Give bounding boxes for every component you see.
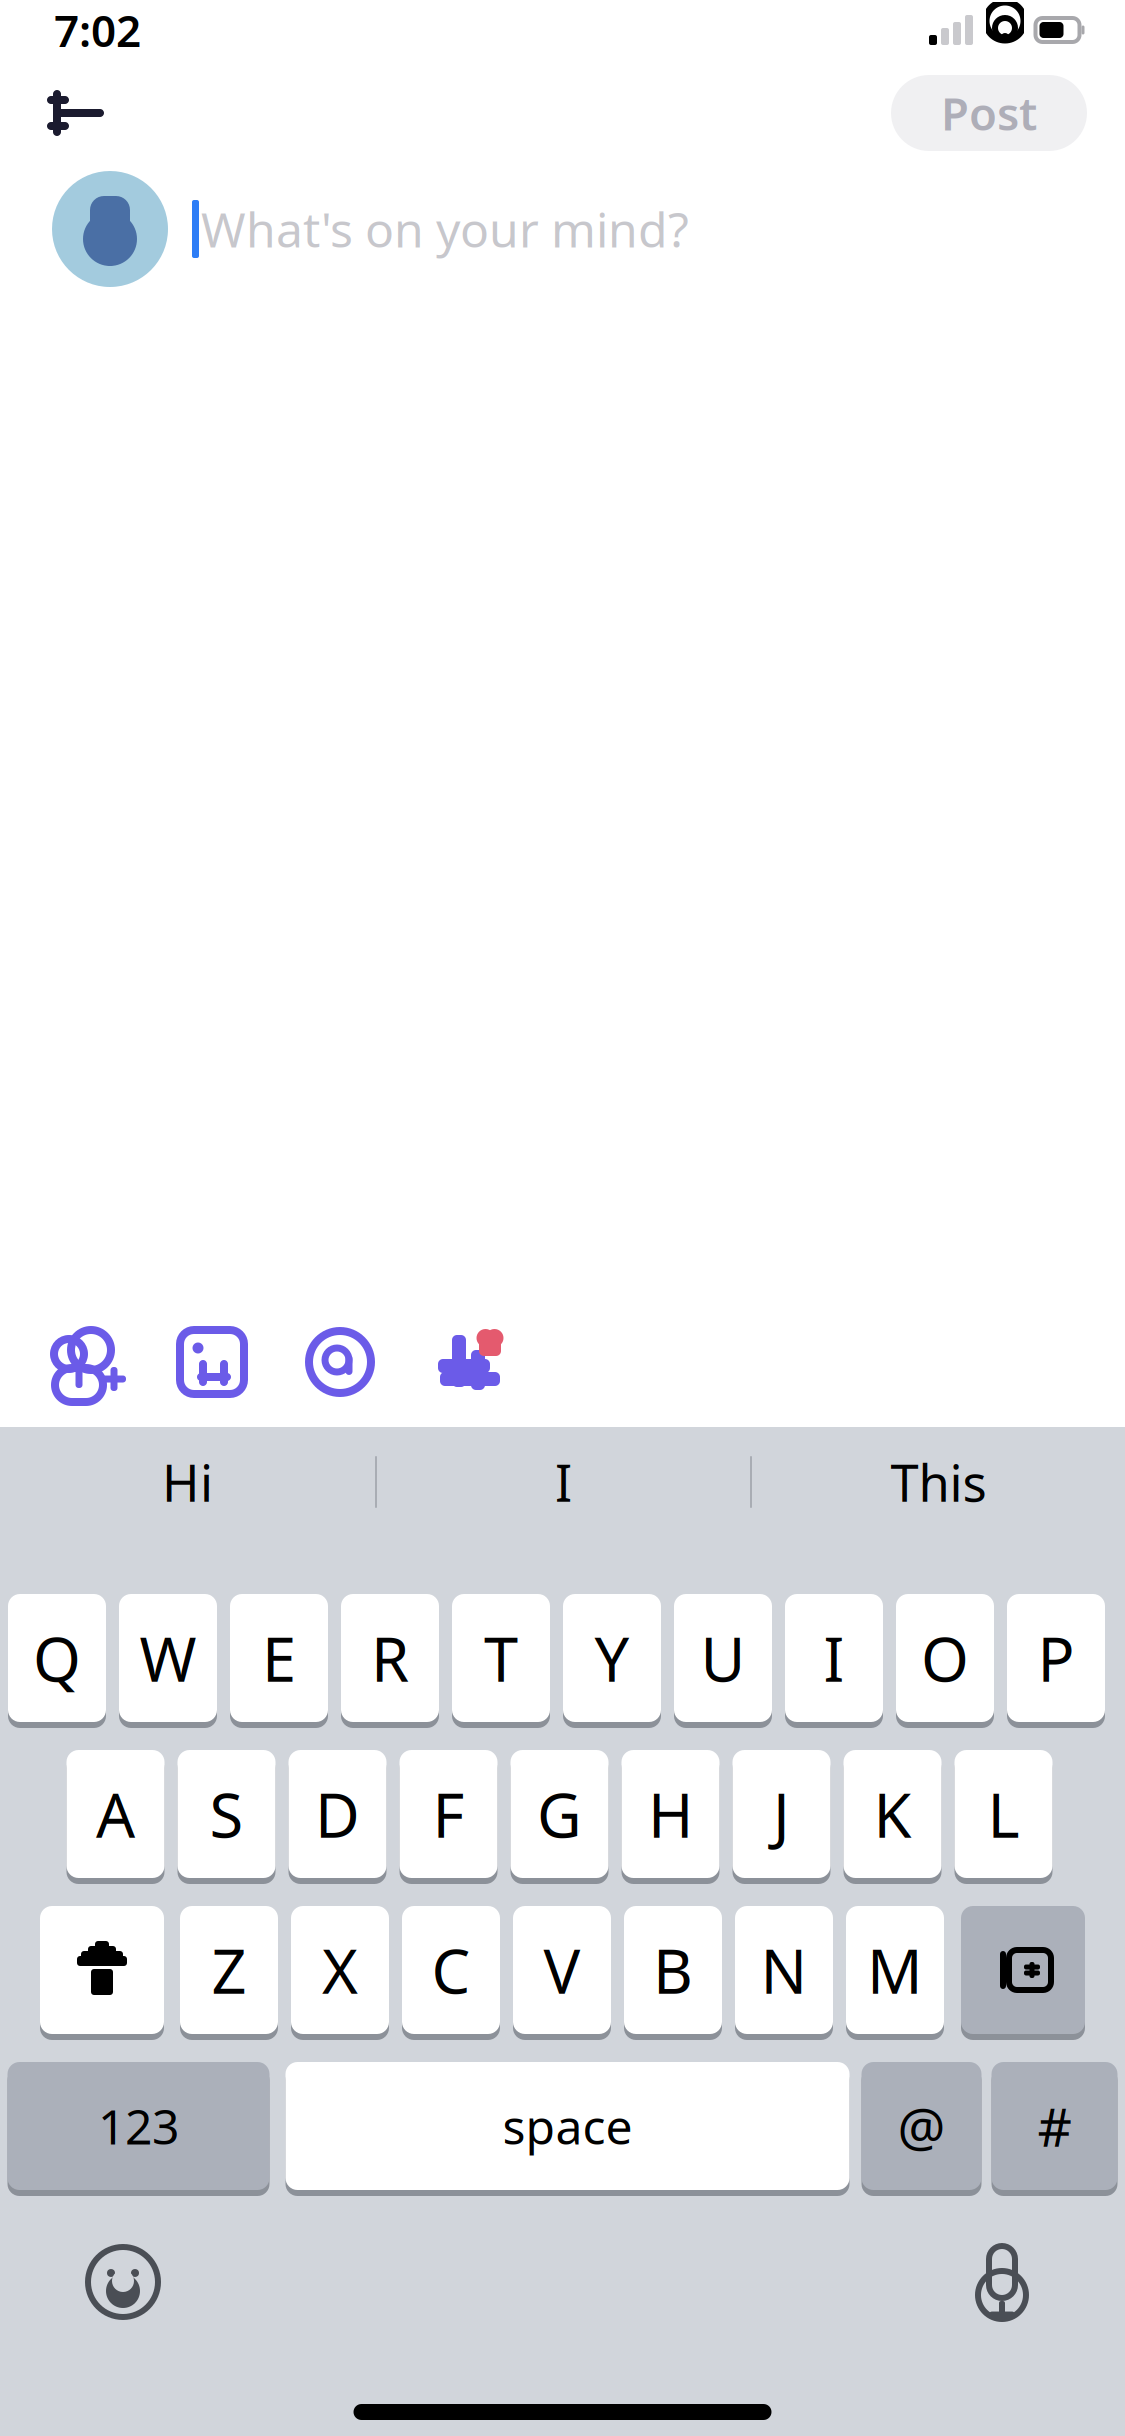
button[interactable]: P	[1007, 1591, 1105, 1731]
button[interactable]: D	[288, 1747, 386, 1887]
staticText: I	[555, 1448, 572, 1516]
button[interactable]: A	[66, 1747, 164, 1887]
button[interactable]: G	[510, 1747, 608, 1887]
staticText: U	[700, 1617, 745, 1699]
button[interactable]: Z	[180, 1903, 278, 2043]
staticText: Post	[941, 83, 1037, 143]
button[interactable]: I	[377, 1427, 750, 1537]
button[interactable]: @	[861, 2059, 981, 2199]
button[interactable]: I	[785, 1591, 883, 1731]
staticText: Hi	[162, 1448, 213, 1516]
button[interactable]: S	[177, 1747, 275, 1887]
button[interactable]: R	[341, 1591, 439, 1731]
button[interactable]: E	[230, 1591, 328, 1731]
staticText: T	[484, 1617, 518, 1699]
button[interactable]: U	[674, 1591, 772, 1731]
staticText: G	[537, 1773, 582, 1855]
button[interactable]: L	[954, 1747, 1052, 1887]
staticText: Q	[33, 1617, 81, 1699]
button[interactable]: Emoji keyboard	[68, 2227, 178, 2337]
button[interactable]: 123	[7, 2059, 269, 2199]
staticText: A	[96, 1773, 135, 1855]
staticText: M	[867, 1929, 923, 2011]
staticText: S	[209, 1773, 243, 1855]
staticText: 123	[98, 2094, 179, 2158]
button[interactable]: This	[752, 1427, 1125, 1537]
staticText: W	[139, 1617, 196, 1699]
button[interactable]: #	[991, 2059, 1117, 2199]
button[interactable]: H	[621, 1747, 719, 1887]
staticText: F	[432, 1773, 464, 1855]
button[interactable]: Shift	[40, 1903, 164, 2043]
button[interactable]: M	[846, 1903, 944, 2043]
button[interactable]: Mention someone	[306, 1328, 374, 1396]
staticText: D	[315, 1773, 360, 1855]
button[interactable]: Dictation	[947, 2227, 1057, 2337]
staticText: What's on your mind?	[201, 197, 689, 261]
staticText: R	[371, 1617, 409, 1699]
button[interactable]: O	[896, 1591, 994, 1731]
staticText: B	[653, 1929, 693, 2011]
button[interactable]: X	[291, 1903, 389, 2043]
staticText: C	[431, 1929, 470, 2011]
button[interactable]: B	[624, 1903, 722, 2043]
staticText: #	[1037, 2091, 1071, 2161]
staticText: 7:02	[54, 1, 141, 59]
staticText: O	[921, 1617, 969, 1699]
button[interactable]: J	[732, 1747, 830, 1887]
button[interactable]: Hi	[0, 1427, 375, 1537]
staticText: E	[262, 1617, 296, 1699]
staticText: This	[890, 1448, 986, 1516]
staticText: space	[502, 2094, 632, 2158]
button[interactable]: F	[399, 1747, 497, 1887]
staticText: I	[823, 1617, 844, 1699]
button[interactable]: K	[843, 1747, 941, 1887]
button[interactable]: Add plant	[44, 1320, 128, 1404]
staticText: Y	[594, 1617, 629, 1699]
button[interactable]: N	[735, 1903, 833, 2043]
button[interactable]: Y	[563, 1591, 661, 1731]
button[interactable]: Add photo	[176, 1326, 248, 1398]
staticText: J	[773, 1773, 790, 1855]
staticText: X	[322, 1929, 358, 2011]
staticText: L	[987, 1773, 1019, 1855]
button[interactable]: C	[402, 1903, 500, 2043]
button[interactable]: Q	[8, 1591, 106, 1731]
button[interactable]: Add tag	[432, 1324, 508, 1400]
staticText: @	[897, 2091, 945, 2161]
button[interactable]: Delete	[961, 1903, 1085, 2043]
staticText: V	[543, 1929, 580, 2011]
staticText: P	[1037, 1617, 1074, 1699]
staticText: H	[648, 1773, 693, 1855]
button[interactable]: W	[119, 1591, 217, 1731]
button[interactable]: Back	[30, 70, 116, 156]
button[interactable]: T	[452, 1591, 550, 1731]
button[interactable]: space	[285, 2059, 849, 2199]
button[interactable]: Post	[891, 75, 1087, 151]
button[interactable]: V	[513, 1903, 611, 2043]
staticText: K	[873, 1773, 911, 1855]
staticText: N	[760, 1929, 807, 2011]
staticText: Z	[211, 1929, 246, 2011]
